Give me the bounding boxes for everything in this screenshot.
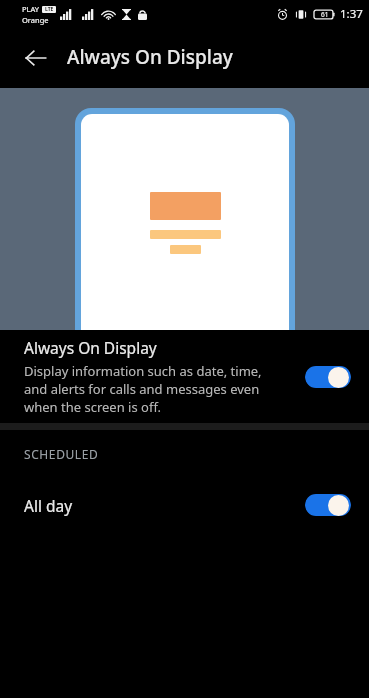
staticText: 61: [321, 10, 329, 19]
staticText: Display information such as date, time, …: [24, 362, 262, 416]
staticText: PLAY: [22, 4, 40, 14]
staticText: All day: [24, 495, 305, 516]
staticText: Always On Display: [24, 337, 157, 358]
staticText: SCHEDULED: [24, 446, 99, 462]
button[interactable]: All day: [0, 478, 369, 532]
staticText: Orange: [22, 15, 49, 25]
button[interactable]: Back: [14, 36, 58, 80]
staticText: LTE: [45, 6, 54, 13]
staticText: 1:37: [340, 6, 363, 22]
staticText: Always On Display: [67, 44, 233, 70]
button[interactable]: Always On Display: [0, 330, 369, 423]
button[interactable]: Toggle: [305, 364, 351, 390]
button[interactable]: Toggle: [305, 492, 351, 518]
